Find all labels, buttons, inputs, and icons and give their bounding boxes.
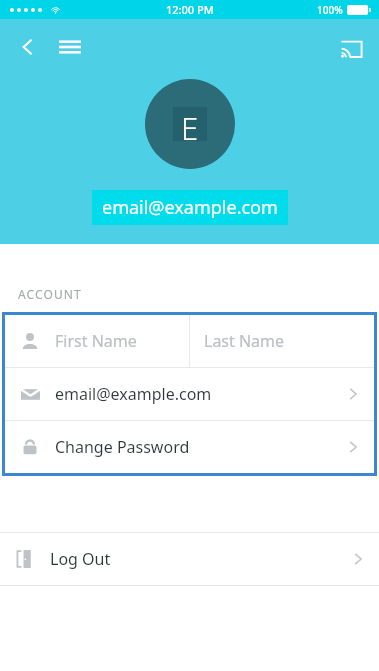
staticText: ACCOUNT [18, 286, 82, 302]
button[interactable]: Change Password [5, 421, 374, 473]
button[interactable]: email@example.com [5, 368, 374, 420]
button[interactable]: email@example.com [92, 190, 288, 225]
staticText: Log Out [50, 548, 111, 570]
staticText: Change Password [55, 436, 190, 458]
staticText: email@example.com [55, 383, 212, 405]
button[interactable]: Log Out [0, 533, 379, 585]
staticText: Last Name [204, 330, 285, 352]
button[interactable]: Menu [48, 25, 92, 69]
staticText: 100% [317, 3, 343, 17]
staticText: email@example.com [102, 195, 278, 220]
button[interactable]: Profile photo [145, 79, 235, 169]
button[interactable]: Back [6, 25, 50, 69]
button[interactable]: First Name [5, 315, 189, 367]
button[interactable]: Last Name [190, 315, 374, 367]
staticText: 12:00 PM [166, 2, 214, 17]
button[interactable]: Cast [329, 25, 373, 69]
staticText: First Name [55, 330, 137, 352]
staticText: E [181, 107, 199, 141]
